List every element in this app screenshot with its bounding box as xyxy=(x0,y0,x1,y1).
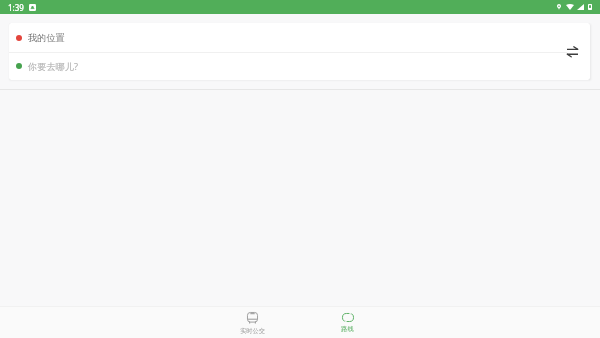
button[interactable]: 你要去哪儿? xyxy=(9,52,590,80)
staticText: 我的位置 xyxy=(28,32,65,44)
button[interactable]: Swap origin and destination xyxy=(555,23,590,80)
staticText: 实时公交 xyxy=(240,327,265,335)
button[interactable]: 实时公交 xyxy=(205,307,300,338)
button[interactable]: 路线 xyxy=(300,307,395,338)
button[interactable]: 我的位置 xyxy=(9,23,590,52)
staticText: 你要去哪儿? xyxy=(28,60,78,73)
staticText: 1:39 xyxy=(8,2,24,13)
staticText: 路线 xyxy=(341,325,354,333)
